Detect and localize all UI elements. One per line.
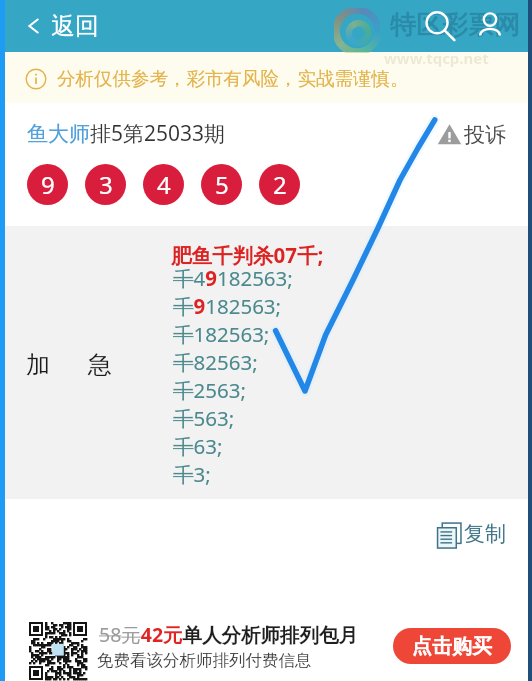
staticText: 急 xyxy=(88,350,112,380)
staticText: 千82563; xyxy=(173,348,258,376)
staticText: 4 xyxy=(157,168,171,201)
staticText: 千182563; xyxy=(173,320,270,348)
staticText: 分析仅供参考，彩市有风险，实战需谨慎。 xyxy=(57,67,409,90)
staticText: 点击购买 xyxy=(412,634,492,659)
staticText: www.tqcp.net xyxy=(384,48,489,68)
staticText: 千2563; xyxy=(173,376,246,404)
button[interactable]: 2 xyxy=(259,164,300,205)
button[interactable]: 9 xyxy=(27,164,68,205)
staticText: 9 xyxy=(41,168,55,201)
button[interactable]: 复制 xyxy=(434,519,508,549)
button[interactable]: 3 xyxy=(85,164,126,205)
staticText: 58元42元单人分析师排列包月 xyxy=(99,621,359,648)
staticText: 返回 xyxy=(51,11,99,41)
button[interactable]: 返回 xyxy=(24,11,99,41)
button[interactable]: 投诉 xyxy=(437,122,506,148)
button[interactable]: Search xyxy=(422,10,454,42)
staticText: 特区彩票网 xyxy=(390,9,520,42)
button[interactable]: 5 xyxy=(201,164,242,205)
staticText: 2 xyxy=(273,168,287,201)
staticText: 复制 xyxy=(464,521,506,547)
staticText: 鱼大师排5第25033期 xyxy=(27,119,226,148)
staticText: 千63; xyxy=(173,432,223,460)
staticText: 千9182563; xyxy=(173,292,282,320)
staticText: 3 xyxy=(99,168,113,201)
staticText: 5 xyxy=(215,168,229,201)
staticText: 千563; xyxy=(173,404,235,432)
staticText: 千49182563; xyxy=(173,264,293,292)
button[interactable]: 4 xyxy=(143,164,184,205)
staticText: 免费看该分析师排列付费信息 xyxy=(97,650,312,671)
staticText: 投诉 xyxy=(464,122,506,148)
staticText: 千3; xyxy=(173,460,211,488)
button[interactable]: Profile xyxy=(474,10,506,42)
staticText: 加 xyxy=(26,350,50,380)
staticText: 肥鱼千判杀07千; xyxy=(171,241,324,269)
button[interactable]: 点击购买 xyxy=(393,628,511,664)
